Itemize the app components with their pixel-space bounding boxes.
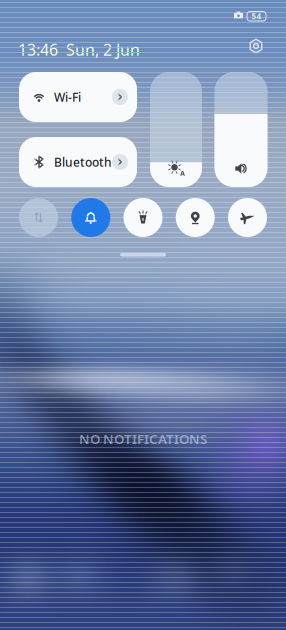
button[interactable]: A — [150, 72, 202, 187]
button[interactable]: Mobile data — [19, 198, 58, 237]
staticText: Wi-Fi — [54, 89, 81, 105]
staticText: Bluetooth — [54, 154, 112, 170]
button[interactable] — [214, 72, 267, 187]
staticText: 54 — [251, 11, 261, 21]
staticText: 13:46 Sun, 2 Jun — [18, 39, 140, 60]
button[interactable]: Bluetooth — [19, 137, 137, 187]
button[interactable]: Wi-Fi — [19, 72, 137, 122]
button[interactable]: Flashlight — [123, 198, 162, 237]
button[interactable]: Airplane mode — [228, 198, 267, 237]
staticText: A — [180, 169, 185, 177]
button[interactable]: Settings — [248, 38, 264, 54]
button[interactable]: Location — [176, 198, 215, 237]
button[interactable]: Ring mode — [71, 198, 110, 237]
staticText: NO NOTIFICATIONS — [79, 430, 207, 448]
